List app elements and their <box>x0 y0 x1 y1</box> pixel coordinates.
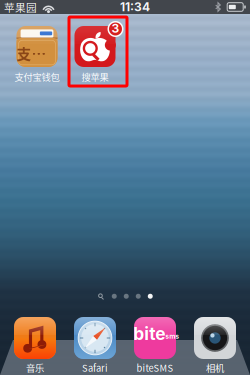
staticText: 支付宝钱包 <box>14 70 59 83</box>
staticText: 3 <box>111 21 119 36</box>
button[interactable]: Safari <box>74 317 116 374</box>
staticText: biteSMS <box>136 361 173 374</box>
staticText: bite <box>133 323 165 344</box>
staticText: 相机 <box>206 361 224 374</box>
button[interactable]: 音乐 <box>14 317 56 374</box>
staticText: 苹果园 <box>4 0 37 15</box>
button[interactable]: 支付宝 <box>8 26 66 83</box>
staticText: 11:34 <box>120 0 150 14</box>
staticText: sms <box>165 332 179 340</box>
staticText: 支付宝 <box>16 42 57 64</box>
staticText: 搜苹果 <box>81 70 108 83</box>
button[interactable]: bite <box>134 317 176 374</box>
button[interactable]: 3 <box>66 26 124 83</box>
staticText: 音乐 <box>26 361 44 374</box>
button[interactable]: 相机 <box>194 317 236 374</box>
staticText: Safari <box>82 361 108 374</box>
